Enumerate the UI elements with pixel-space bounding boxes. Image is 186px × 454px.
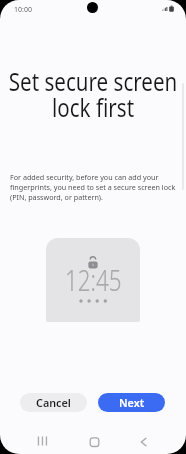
button[interactable] <box>85 433 102 449</box>
button[interactable] <box>135 433 152 449</box>
staticText: Set secure screen lock first <box>0 65 186 125</box>
staticText: 10:00 <box>14 5 32 15</box>
button[interactable]: Next <box>98 393 165 412</box>
staticText: 12:45 <box>65 260 122 299</box>
button[interactable]: Cancel <box>20 393 87 412</box>
staticText: For added security, before you can add y… <box>10 172 176 202</box>
button[interactable] <box>34 433 51 449</box>
staticText: Next <box>119 395 145 410</box>
staticText: Cancel <box>36 395 71 410</box>
